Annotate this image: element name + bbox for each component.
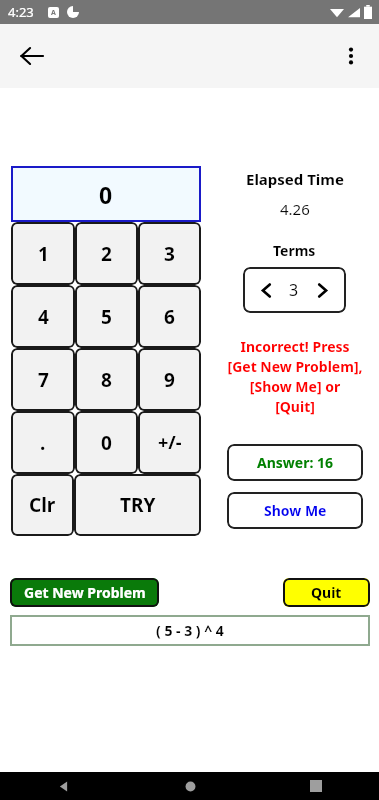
button[interactable]: Clr	[11, 474, 74, 536]
button[interactable]: 9	[138, 348, 201, 411]
staticText: 4.26	[280, 199, 310, 219]
staticText: Terms	[273, 241, 316, 260]
staticText: Quit	[311, 583, 342, 602]
staticText: 0	[99, 179, 113, 210]
staticText: Elapsed Time	[246, 169, 344, 189]
button[interactable]: More options	[327, 32, 375, 80]
staticText: Get New Problem	[24, 583, 146, 602]
button[interactable]: 3	[138, 222, 201, 285]
staticText: .	[40, 430, 46, 456]
button[interactable]: Home	[127, 772, 253, 800]
button[interactable]: 2	[75, 222, 138, 285]
staticText: 6	[164, 304, 175, 330]
staticText: 0	[101, 430, 112, 456]
staticText: 9	[164, 367, 175, 393]
button[interactable]: 4	[11, 285, 75, 348]
staticText: 8	[101, 367, 112, 393]
button[interactable]: .	[11, 411, 75, 474]
button[interactable]: 8	[75, 348, 138, 411]
button[interactable]: Show Me	[227, 492, 363, 529]
button[interactable]: Back	[8, 32, 56, 80]
staticText: 5	[101, 304, 112, 330]
staticText: 3	[164, 241, 175, 267]
staticText: 1	[38, 241, 49, 267]
button[interactable]: Answer: 16	[227, 444, 363, 481]
button[interactable]: Quit	[283, 578, 370, 607]
staticText: Incorrect! Press [Get New Problem], [Sho…	[227, 337, 363, 416]
button[interactable]: 7	[11, 348, 75, 411]
staticText: 3	[289, 279, 299, 301]
button[interactable]: 5	[75, 285, 138, 348]
button[interactable]: TRY	[74, 474, 201, 536]
staticText: ( 5 - 3 ) ^ 4	[156, 621, 224, 640]
button[interactable]: +/-	[138, 411, 201, 474]
button[interactable]: Get New Problem	[10, 578, 159, 607]
button[interactable]: 1	[11, 222, 75, 285]
staticText: 7	[38, 367, 49, 393]
button[interactable]: 6	[138, 285, 201, 348]
staticText: 4	[38, 304, 49, 330]
button[interactable]: 0	[75, 411, 138, 474]
button[interactable]: Back	[0, 772, 127, 800]
staticText: 4:23	[8, 3, 34, 21]
staticText: +/-	[158, 430, 182, 455]
button[interactable]: Decrease terms	[243, 267, 289, 313]
button[interactable]: Recent apps	[253, 772, 379, 800]
staticText: Answer: 16	[257, 453, 334, 472]
staticText: A	[51, 8, 56, 18]
staticText: Show Me	[264, 501, 327, 520]
staticText: TRY	[120, 492, 156, 518]
staticText: 2	[101, 241, 112, 267]
staticText: Clr	[29, 492, 56, 518]
button[interactable]: Increase terms	[299, 267, 346, 313]
